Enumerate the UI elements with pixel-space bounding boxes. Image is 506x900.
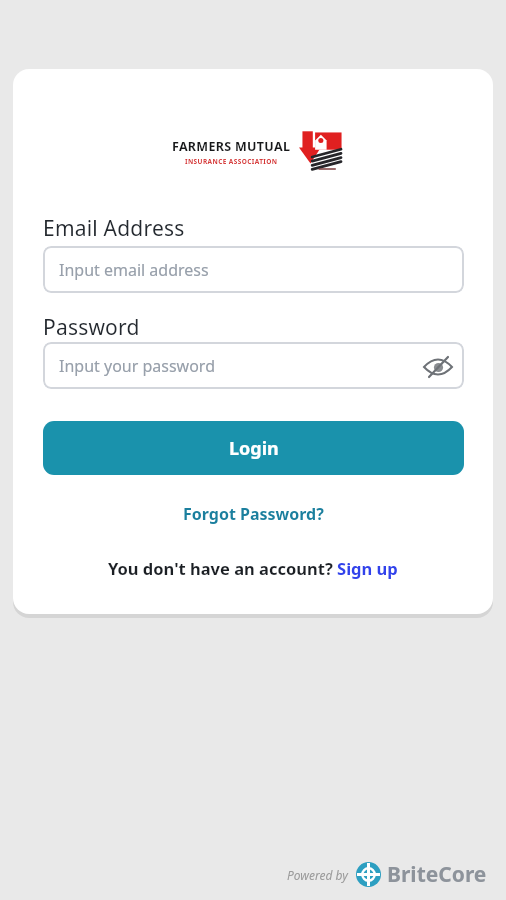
button[interactable]: Login (43, 421, 464, 475)
staticText: Login (229, 436, 279, 461)
staticText: Password (43, 313, 140, 342)
staticText: Powered by (287, 867, 348, 883)
staticText: BriteCore (387, 860, 487, 889)
staticText: Input your password (59, 355, 216, 377)
button[interactable]: Input email address (43, 246, 464, 293)
button[interactable]: You don't have an account? Sign up (108, 557, 398, 579)
staticText: Email Address (43, 214, 185, 243)
staticText: INSURANCE ASSOCIATION (185, 157, 278, 166)
staticText: FARMERS MUTUAL (172, 138, 291, 155)
staticText: You don't have an account? Sign up (108, 557, 398, 579)
staticText: Input email address (59, 259, 209, 281)
button[interactable]: Input your password (43, 342, 464, 389)
button[interactable]: Forgot Password? (183, 503, 324, 525)
staticText: Forgot Password? (183, 503, 324, 525)
